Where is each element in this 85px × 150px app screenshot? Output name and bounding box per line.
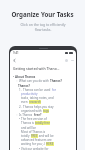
staticText: tasks, taking notes, and: [21, 96, 55, 100]
staticText: productivity: [21, 92, 38, 96]
staticText: research: [29, 100, 41, 104]
staticText: totally: [21, 134, 31, 138]
staticText: for: [52, 88, 57, 92]
staticText: Organize Your Tasks: [11, 10, 74, 18]
staticText: tags: [43, 109, 49, 113]
staticText: FREE: [31, 134, 38, 138]
staticText: 1.: [19, 88, 23, 92]
staticText: Visit our website for: [21, 147, 49, 150]
staticText: ◦: [16, 79, 19, 83]
button[interactable]: Profile: [63, 57, 69, 63]
staticText: The free version of: [21, 117, 48, 121]
staticText: organised with: [21, 109, 43, 113]
staticText: Thanos helps you stay: [23, 105, 54, 109]
staticText: free?: [34, 113, 42, 117]
staticText: Most of Thanos is: [21, 130, 46, 134]
staticText: 9:41: [13, 51, 19, 55]
staticText: •: [19, 147, 21, 150]
staticText: Thanos can be used: [23, 88, 52, 92]
staticText: What can you do with: [19, 79, 50, 83]
staticText: 2.: [19, 105, 23, 109]
staticText: waiting for you ;-): [21, 142, 46, 146]
staticText: advanced features are: [21, 138, 52, 142]
staticText: HERE: [46, 142, 54, 146]
staticText: About Thanos: [15, 75, 36, 79]
button[interactable]: Back: [11, 57, 17, 63]
staticText: Thanos is: [21, 121, 35, 125]
staticText: even: [21, 100, 29, 104]
staticText: Click on the tag to efficiently flow tas…: [20, 22, 66, 32]
staticText: Is Thanos: [19, 113, 34, 117]
staticText: •: [13, 75, 15, 79]
staticText: Thanos?: [50, 79, 62, 83]
staticText: and will be: [38, 134, 54, 138]
staticText: Thanos?: [18, 84, 30, 88]
staticText: and will be: [21, 126, 36, 130]
staticText: ◦: [16, 113, 19, 117]
staticText: totally free: [35, 121, 50, 125]
staticText: Getting started with Thano...: [13, 66, 60, 71]
button[interactable]: More options: [69, 57, 75, 63]
staticText: •: [19, 117, 21, 121]
